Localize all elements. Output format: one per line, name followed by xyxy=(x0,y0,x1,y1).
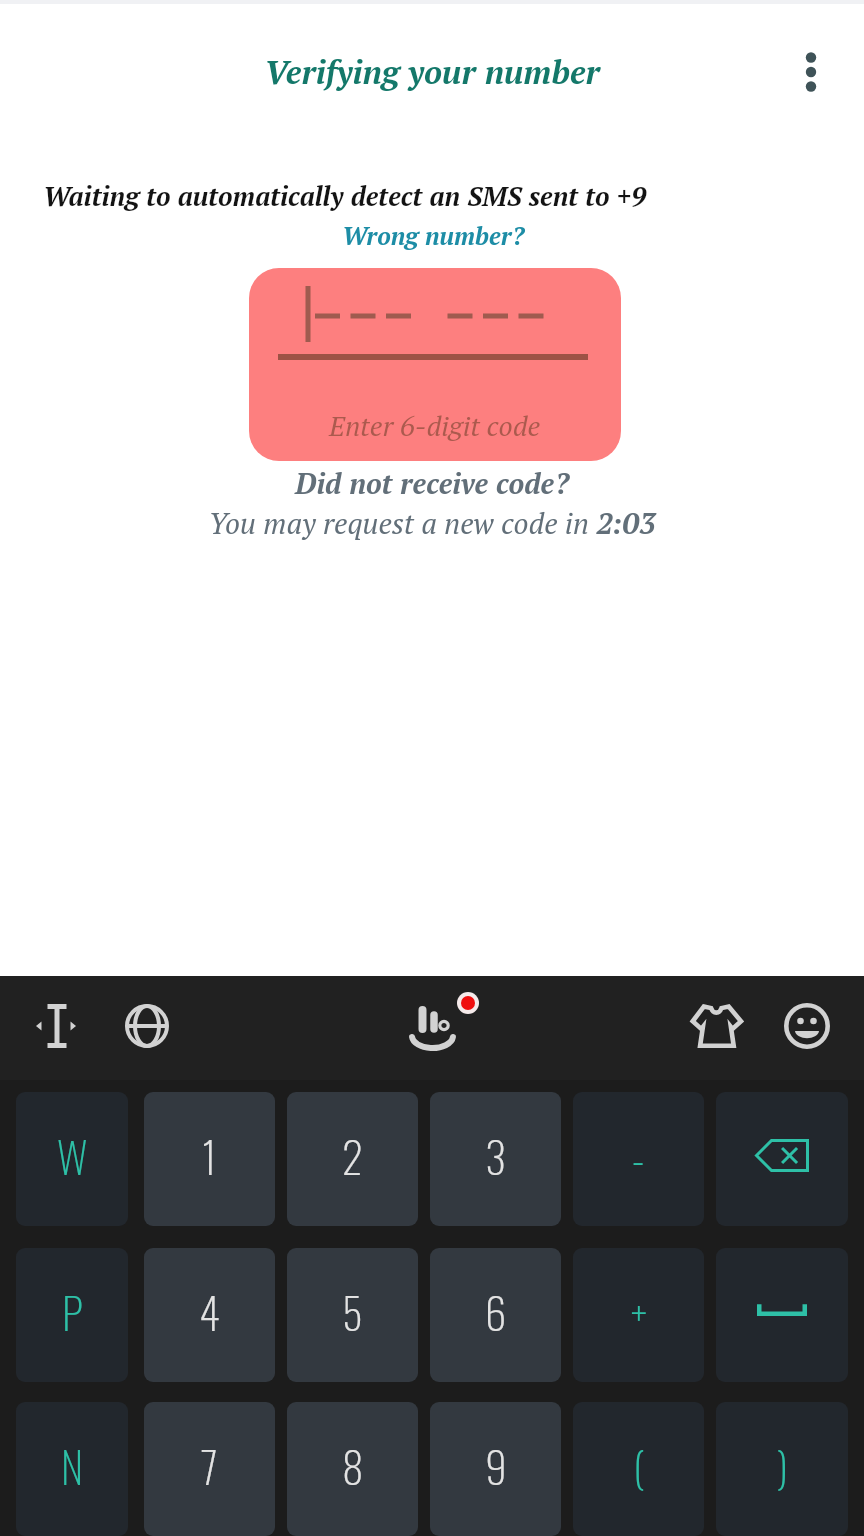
button[interactable]: Emoji xyxy=(771,990,843,1062)
staticText: 3 xyxy=(485,1124,506,1188)
button[interactable]: W xyxy=(16,1092,128,1226)
button[interactable]: 2 xyxy=(287,1092,418,1226)
staticText: Enter 6-digit code xyxy=(329,407,541,444)
staticText: Did not receive code? xyxy=(295,464,569,502)
staticText: 7 xyxy=(201,1434,218,1498)
button[interactable]: - xyxy=(573,1092,704,1226)
staticText: 2 xyxy=(342,1124,364,1188)
button[interactable]: Did not receive code? xyxy=(285,462,579,504)
button[interactable]: Keyboard menu xyxy=(396,990,468,1062)
button[interactable]: 1 xyxy=(144,1092,275,1226)
button[interactable]: 6 xyxy=(430,1248,561,1382)
staticText: ) xyxy=(777,1434,788,1498)
button[interactable]: 4 xyxy=(144,1248,275,1382)
button[interactable]: Backspace xyxy=(716,1092,848,1226)
staticText: - xyxy=(632,1124,645,1188)
staticText: 8 xyxy=(342,1434,364,1498)
button[interactable]: 5 xyxy=(287,1248,418,1382)
staticText: You may request a new code in 2:03 xyxy=(0,503,864,542)
staticText: 6 xyxy=(485,1280,507,1344)
button[interactable]: Space xyxy=(716,1248,848,1382)
button[interactable]: 7 xyxy=(144,1402,275,1536)
button[interactable]: P xyxy=(16,1248,128,1382)
staticText: Waiting to automatically detect an SMS s… xyxy=(43,178,647,213)
staticText: Wrong number? xyxy=(342,219,525,252)
button[interactable]: 9 xyxy=(430,1402,561,1536)
button[interactable]: Change language xyxy=(111,990,183,1062)
button[interactable]: 8 xyxy=(287,1402,418,1536)
button[interactable]: More options xyxy=(784,45,838,99)
button[interactable]: Wrong number? xyxy=(333,214,533,256)
button[interactable]: N xyxy=(16,1402,128,1536)
staticText: N xyxy=(61,1434,84,1498)
button[interactable]: Themes xyxy=(681,991,753,1063)
staticText: Verifying your number xyxy=(0,50,864,94)
button[interactable]: Move cursor xyxy=(20,990,92,1062)
button[interactable]: + xyxy=(573,1248,704,1382)
button[interactable]: ) xyxy=(716,1402,848,1536)
staticText: W xyxy=(57,1124,88,1188)
staticText: 1 xyxy=(202,1124,217,1188)
staticText: 5 xyxy=(342,1280,363,1344)
staticText: 4 xyxy=(199,1280,221,1344)
button[interactable]: 3 xyxy=(430,1092,561,1226)
button[interactable]: Enter 6-digit code xyxy=(249,268,621,461)
button[interactable]: ( xyxy=(573,1402,704,1536)
staticText: + xyxy=(631,1280,647,1344)
staticText: P xyxy=(62,1280,83,1344)
staticText: 9 xyxy=(485,1434,507,1498)
staticText: ( xyxy=(633,1434,645,1498)
